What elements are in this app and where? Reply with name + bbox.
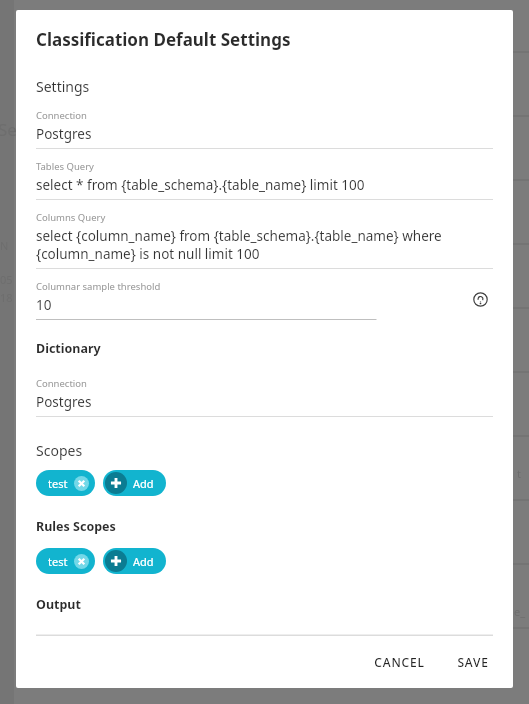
staticText: SAVE xyxy=(457,654,489,670)
staticText: 10 xyxy=(36,296,52,314)
staticText: Postgres xyxy=(36,125,92,143)
staticText: CANCEL xyxy=(374,654,425,670)
staticText: Classification Default Settings xyxy=(36,28,291,51)
staticText: Output xyxy=(36,596,81,613)
staticText: Rules Scopes xyxy=(36,518,116,535)
staticText: test xyxy=(48,476,68,491)
staticText: Columnar sample threshold xyxy=(36,280,161,293)
staticText: Dictionary xyxy=(36,340,101,357)
button[interactable]: Columnar sample threshold xyxy=(36,280,467,320)
staticText: Settings xyxy=(36,77,90,96)
staticText: e_ xyxy=(514,604,526,619)
staticText: Connection xyxy=(36,109,87,122)
button[interactable]: Connection xyxy=(36,377,493,417)
button[interactable]: Connection xyxy=(36,633,493,635)
staticText: Add xyxy=(133,476,154,491)
staticText: Columns Query xyxy=(36,211,106,224)
staticText: Postgres xyxy=(36,393,92,411)
button[interactable]: Add xyxy=(103,470,166,496)
button[interactable]: CANCEL xyxy=(364,646,435,678)
staticText: t xyxy=(517,466,521,481)
staticText: Add xyxy=(133,554,154,569)
staticText: Se xyxy=(0,118,17,141)
button[interactable]: Connection xyxy=(36,109,493,149)
staticText: Connection xyxy=(36,377,87,390)
button[interactable]: Tables Query xyxy=(36,160,493,200)
staticText: Connection xyxy=(36,633,87,635)
button[interactable]: test xyxy=(36,548,95,574)
button[interactable]: Columns Query xyxy=(36,211,493,269)
button[interactable]: test xyxy=(36,470,95,496)
button[interactable]: SAVE xyxy=(447,646,499,678)
staticText: select * from {table_schema}.{table_name… xyxy=(36,176,365,194)
staticText: Scopes xyxy=(36,441,83,460)
staticText: test xyxy=(48,554,68,569)
button[interactable]: Help about columnar sample threshold xyxy=(467,286,493,312)
staticText: Tables Query xyxy=(36,160,94,173)
staticText: select {column_name} from {table_schema}… xyxy=(36,227,442,263)
button[interactable]: Add xyxy=(103,548,166,574)
